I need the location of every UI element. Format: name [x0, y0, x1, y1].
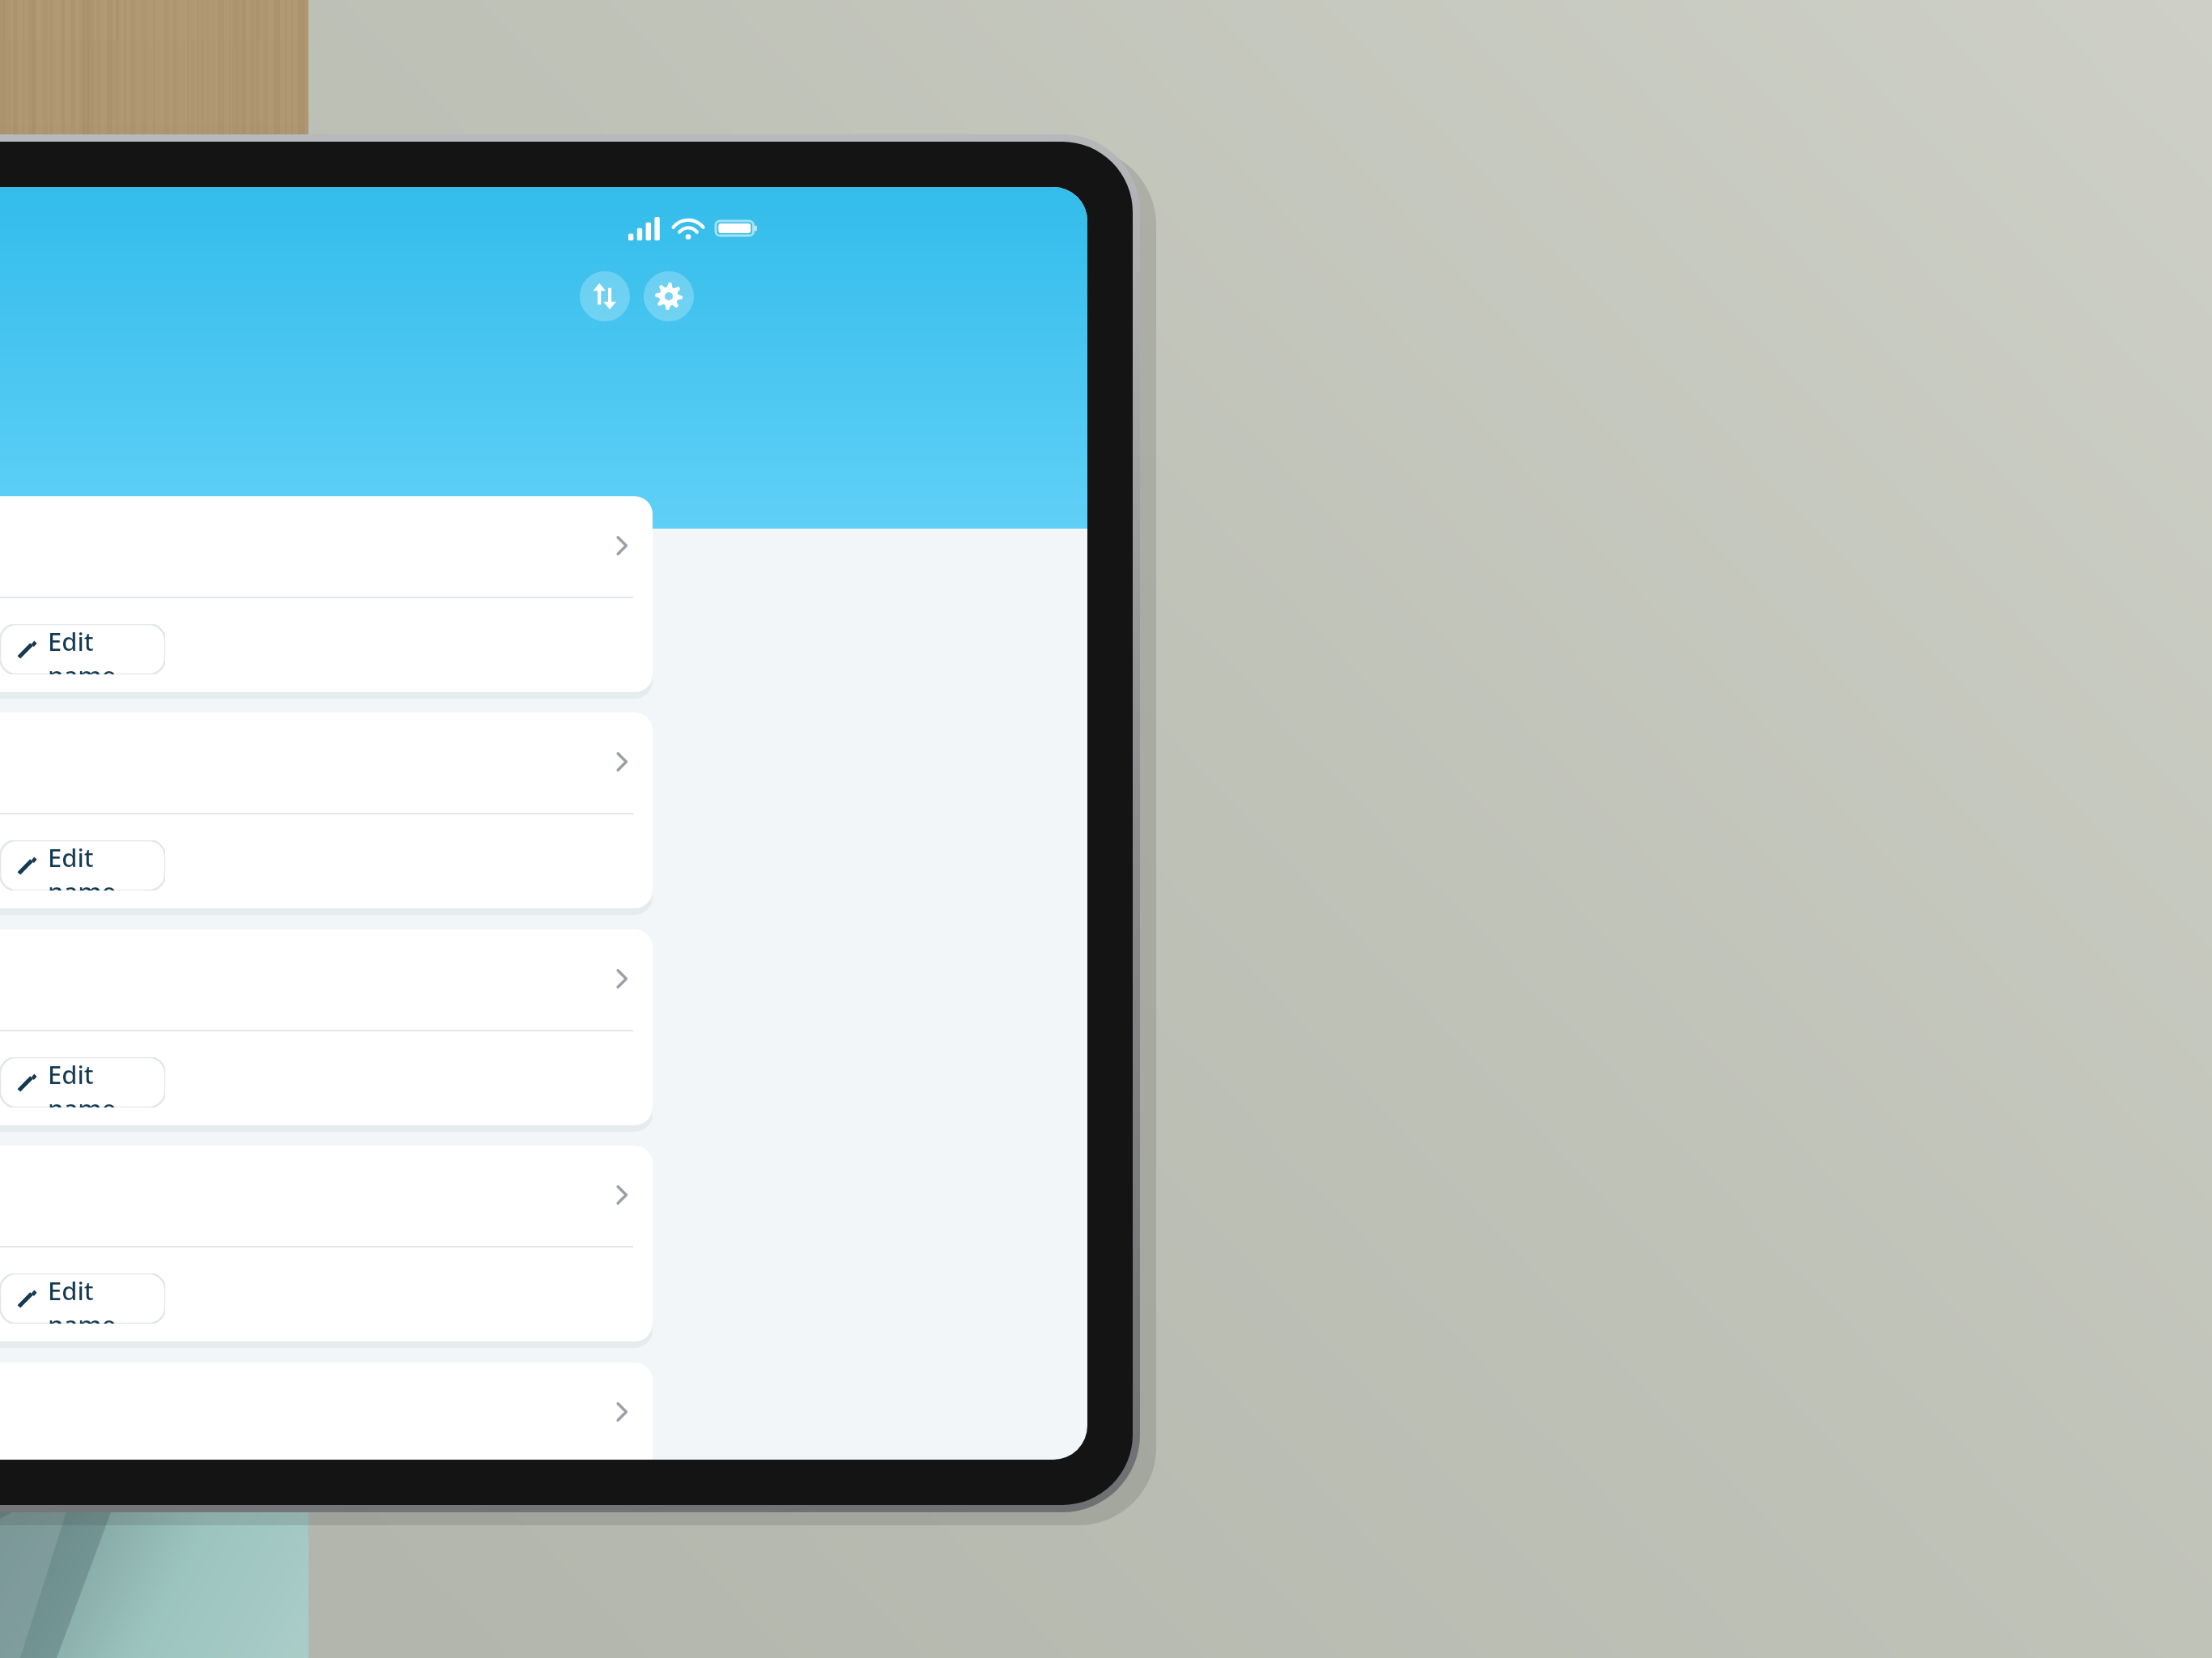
- button[interactable]: Open device: [0, 712, 653, 908]
- button[interactable]: Edit name: [0, 840, 165, 891]
- button[interactable]: Open device: [0, 1363, 653, 1460]
- button[interactable]: Open device: [0, 929, 653, 1125]
- staticText: Edit name: [48, 1057, 165, 1107]
- other: Open device: [609, 966, 635, 992]
- button[interactable]: Sort: [580, 271, 630, 321]
- button[interactable]: Edit name: [0, 624, 165, 674]
- other: Open device: [609, 749, 635, 775]
- staticText: Edit name: [48, 1273, 165, 1324]
- other: Open device: [609, 1182, 635, 1208]
- button[interactable]: Edit name: [0, 1057, 165, 1107]
- other: Open device: [609, 533, 635, 559]
- staticText: Edit name: [48, 840, 165, 891]
- staticText: Edit name: [48, 624, 165, 674]
- other: Open device: [609, 1399, 635, 1425]
- button[interactable]: Edit name: [0, 1273, 165, 1324]
- button[interactable]: Settings: [644, 271, 694, 321]
- button[interactable]: Open device: [0, 1146, 653, 1341]
- button[interactable]: Open device: [0, 496, 653, 692]
